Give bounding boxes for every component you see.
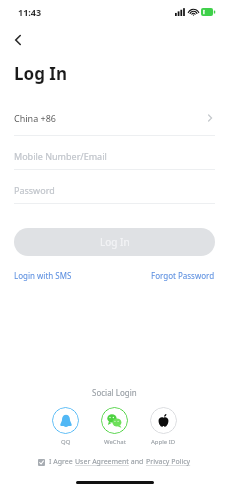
staticText: Mobile Number/Email [14,150,107,162]
button[interactable]: QQ [52,407,79,446]
staticText: China +86 [14,112,56,124]
staticText: Log In [100,235,130,249]
staticText: Password [14,184,55,196]
staticText: QQ [61,438,71,446]
staticText: 11:43 [18,6,42,18]
staticText: Log In [14,62,67,85]
button[interactable]: Apple ID [150,407,177,446]
staticText: Login with SMS [14,270,72,281]
staticText: Privacy Policy [146,457,191,467]
button[interactable]: Back [6,28,30,52]
staticText: User Agreement [75,457,129,467]
button[interactable]: I Agree [34,455,195,469]
button[interactable]: Mobile Number/Email [14,149,215,163]
staticText: I Agree [49,457,75,467]
button[interactable]: Password [14,183,215,197]
staticText: and [129,457,146,467]
button[interactable]: Login with SMS [14,268,72,283]
staticText: WeChat [104,438,126,446]
button[interactable]: Log In [14,228,215,256]
staticText: Forgot Password [151,270,215,281]
staticText: Apple ID [151,438,176,446]
button[interactable]: WeChat [101,407,128,446]
button[interactable]: China +86 [14,107,215,129]
staticText: Social Login [92,387,137,398]
button[interactable]: Forgot Password [151,268,215,283]
